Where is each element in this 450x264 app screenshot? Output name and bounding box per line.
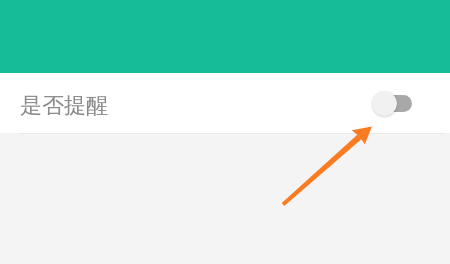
staticText: 是否提醒 (20, 92, 108, 120)
button[interactable]: Toggle reminder (372, 90, 412, 116)
button[interactable]: 是否提醒 (0, 73, 450, 133)
